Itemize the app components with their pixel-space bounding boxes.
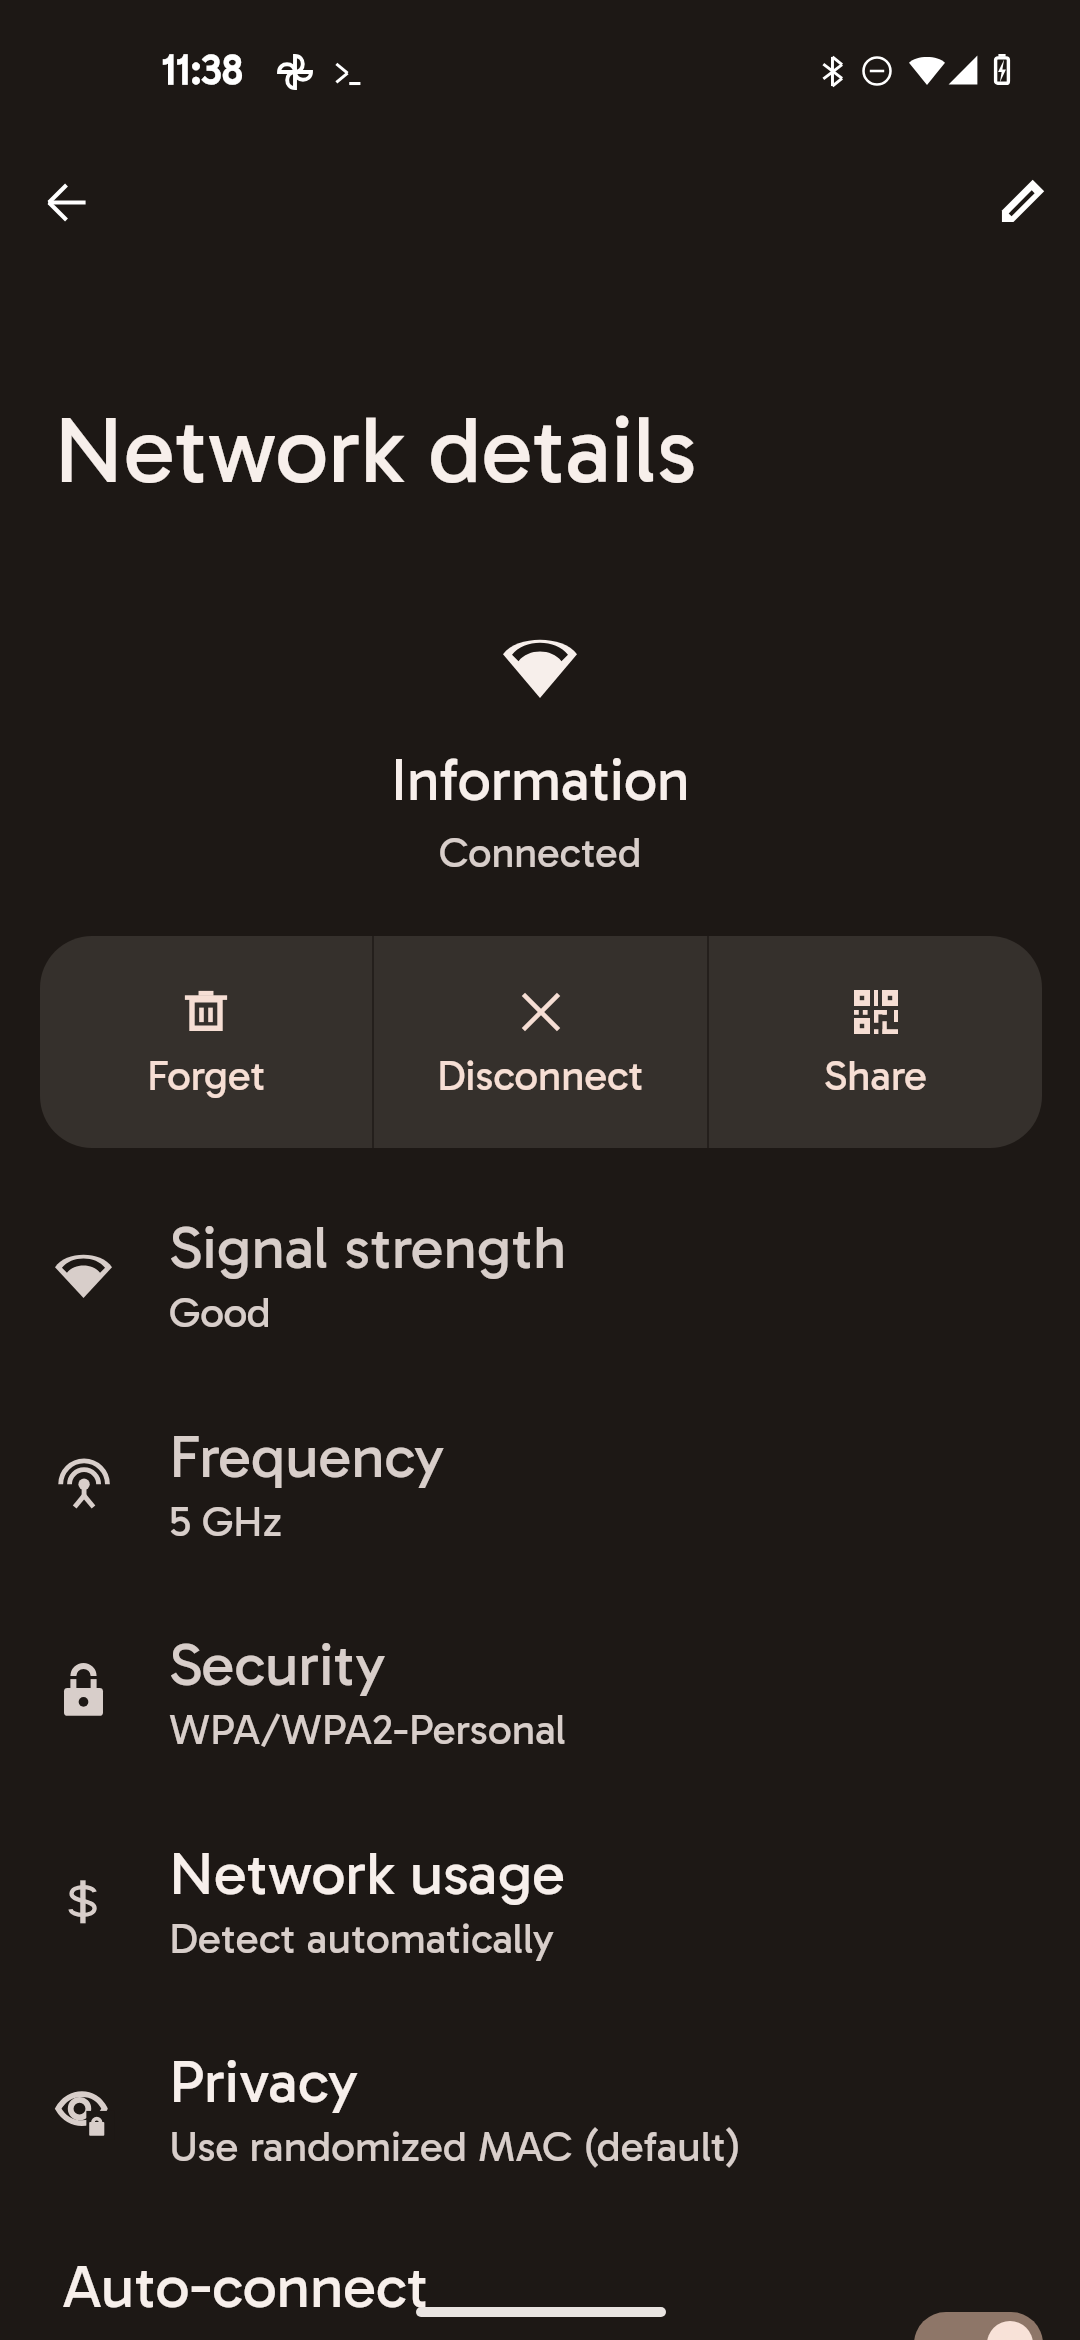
staticText: Detect automatically — [169, 1913, 554, 1964]
button[interactable]: Privacy — [0, 2015, 1080, 2195]
button[interactable]: Forget — [40, 936, 372, 1148]
button[interactable]: Network usage — [0, 1807, 1080, 1987]
staticText: Network usage — [169, 1837, 565, 1910]
staticText: Frequency — [169, 1420, 445, 1493]
staticText: Information — [391, 745, 690, 816]
staticText: Share — [824, 1051, 927, 1101]
staticText: Good — [169, 1287, 271, 1338]
staticText: Use randomized MAC (default) — [169, 2121, 741, 2172]
button[interactable]: Back — [6, 142, 126, 262]
staticText: Auto-connect — [62, 2250, 429, 2323]
button[interactable]: Share — [709, 936, 1042, 1148]
button[interactable]: Security — [0, 1598, 1080, 1778]
staticText: Disconnect — [437, 1051, 644, 1101]
staticText: 5 GHz — [169, 1496, 282, 1547]
button[interactable]: Frequency — [0, 1390, 1080, 1570]
staticText: 11:38 — [162, 45, 244, 94]
staticText: Signal strength — [169, 1211, 567, 1284]
button[interactable]: Signal strength — [0, 1181, 1080, 1361]
staticText: Privacy — [169, 2045, 358, 2118]
staticText: Security — [169, 1628, 386, 1701]
button[interactable]: Edit — [954, 142, 1074, 262]
staticText: Forget — [147, 1051, 266, 1101]
staticText: Network details — [54, 394, 697, 507]
button[interactable]: Disconnect — [374, 936, 707, 1148]
staticText: Connected — [439, 828, 642, 878]
button[interactable]: Auto-connect — [0, 2217, 1080, 2340]
staticText: WPA/WPA2-Personal — [169, 1704, 566, 1755]
